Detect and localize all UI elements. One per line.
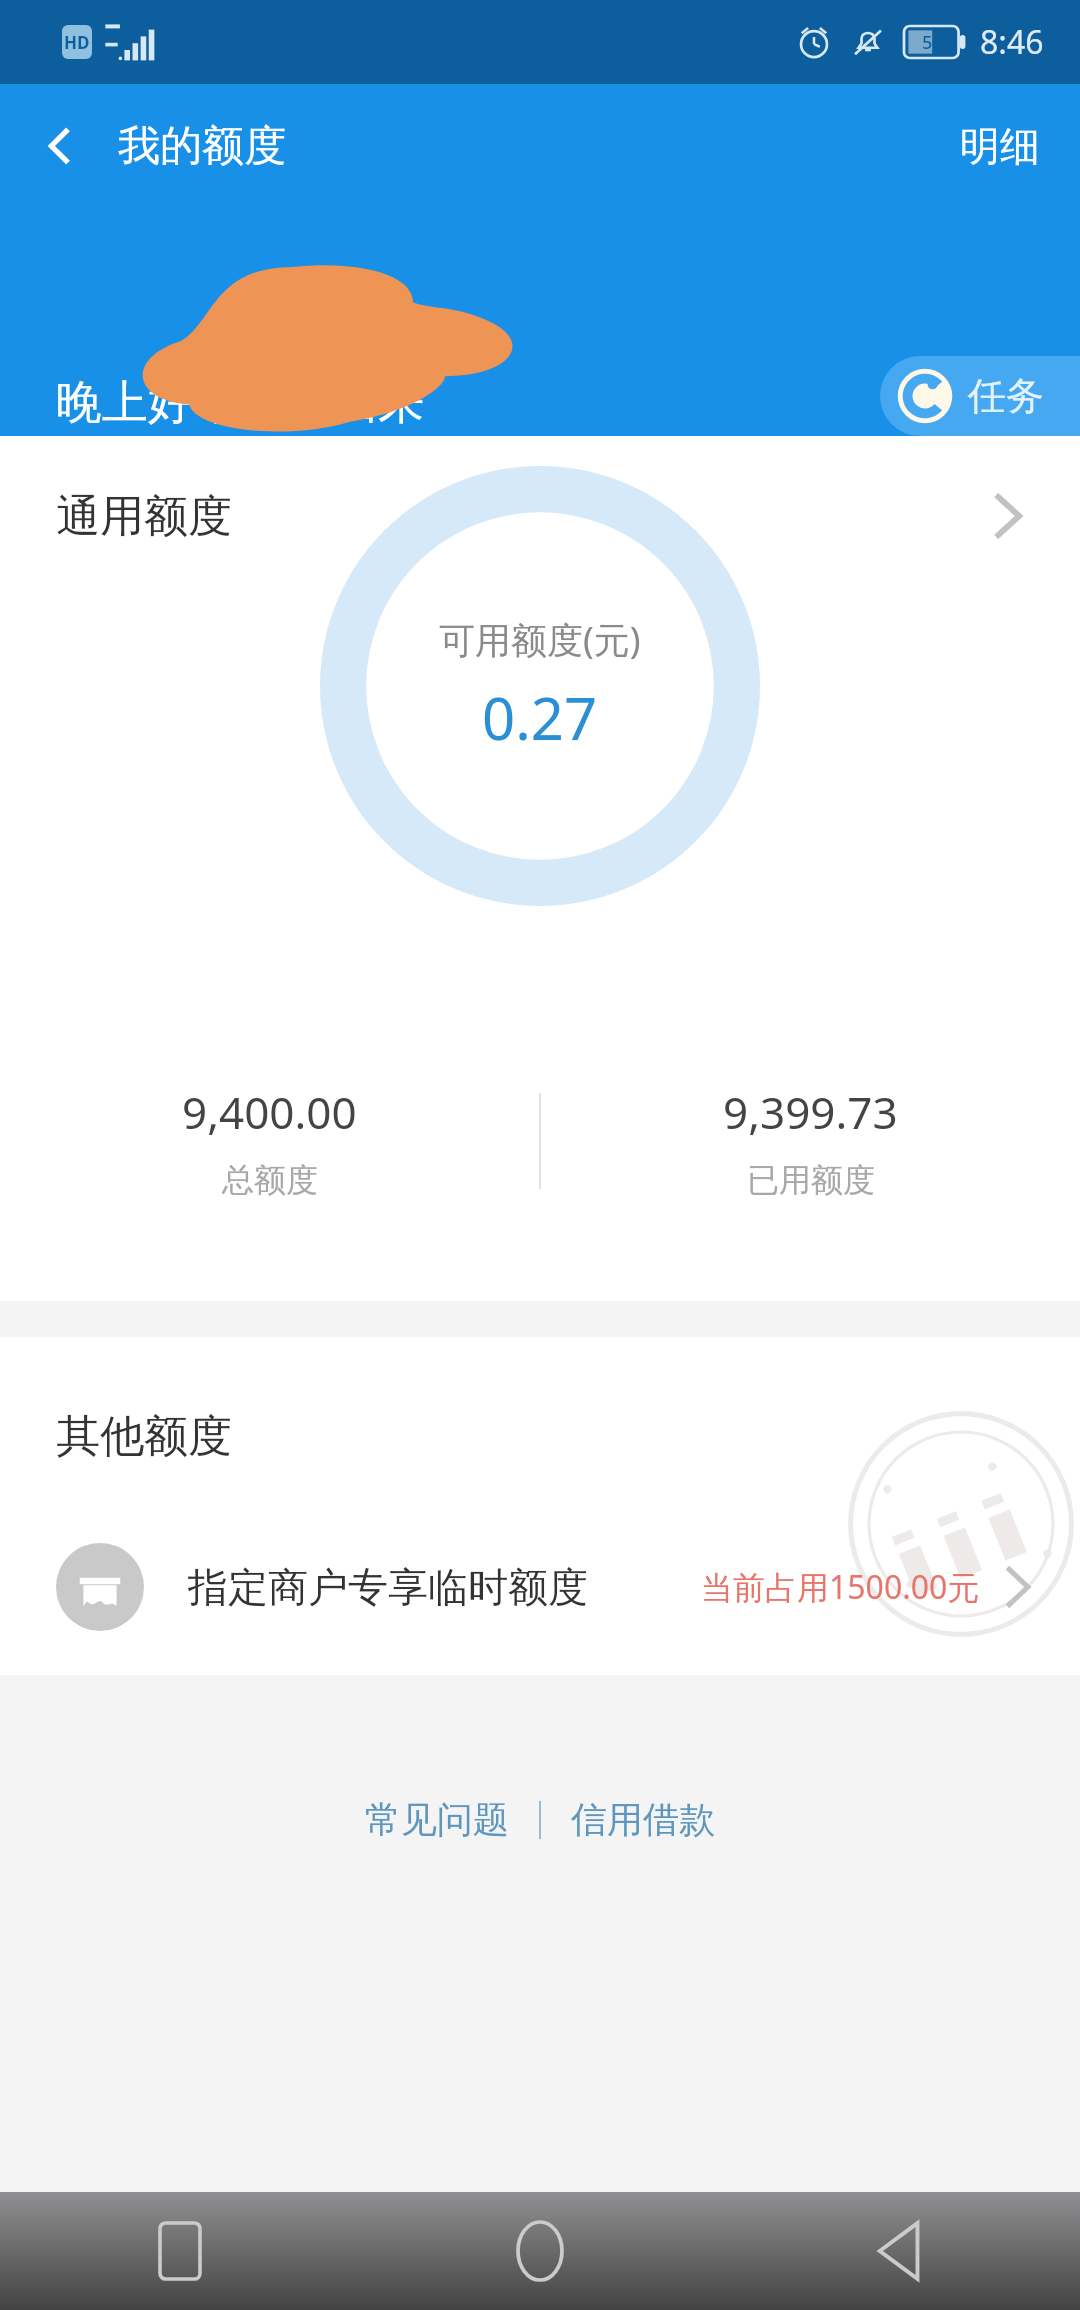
staticText: 其他额度 [56, 1409, 232, 1464]
staticText: 指定商户专享临时额度 [188, 1562, 588, 1612]
button[interactable]: Recent apps [0, 2192, 360, 2310]
staticText: 信用借款 [571, 1797, 715, 1842]
staticText: 9,399.73 [723, 1082, 898, 1142]
button[interactable]: Back [720, 2192, 1080, 2310]
staticText: 明细 [960, 121, 1040, 171]
staticText: 通用额度 [56, 489, 232, 544]
staticText: 当前占用1500.00元 [701, 1565, 980, 1609]
button[interactable]: 明细 [920, 101, 1080, 191]
button[interactable]: 常见问题 [349, 1785, 525, 1854]
staticText: 任务 [968, 372, 1044, 420]
button[interactable]: Home [360, 2192, 720, 2310]
staticText: 总额度 [222, 1160, 318, 1200]
button[interactable]: 任务 [880, 356, 1080, 436]
staticText: 0.27 [482, 678, 598, 757]
button[interactable]: 通用额度 [0, 436, 1080, 596]
button[interactable]: 指定商户专享临时额度 [0, 1517, 1080, 1657]
staticText: HD [64, 31, 90, 54]
button[interactable]: 信用借款 [555, 1785, 731, 1854]
button[interactable]: Back [18, 103, 104, 189]
staticText: 9,400.00 [182, 1082, 357, 1142]
staticText: 常见问题 [365, 1797, 509, 1842]
staticText: 晚上好，欢迎回来 [56, 374, 424, 432]
staticText: 52 [922, 30, 943, 55]
staticText: 已用额度 [747, 1160, 875, 1200]
staticText: 8:46 [980, 20, 1044, 64]
staticText: 我的额度 [118, 120, 286, 173]
staticText: 可用额度(元) [439, 615, 641, 664]
